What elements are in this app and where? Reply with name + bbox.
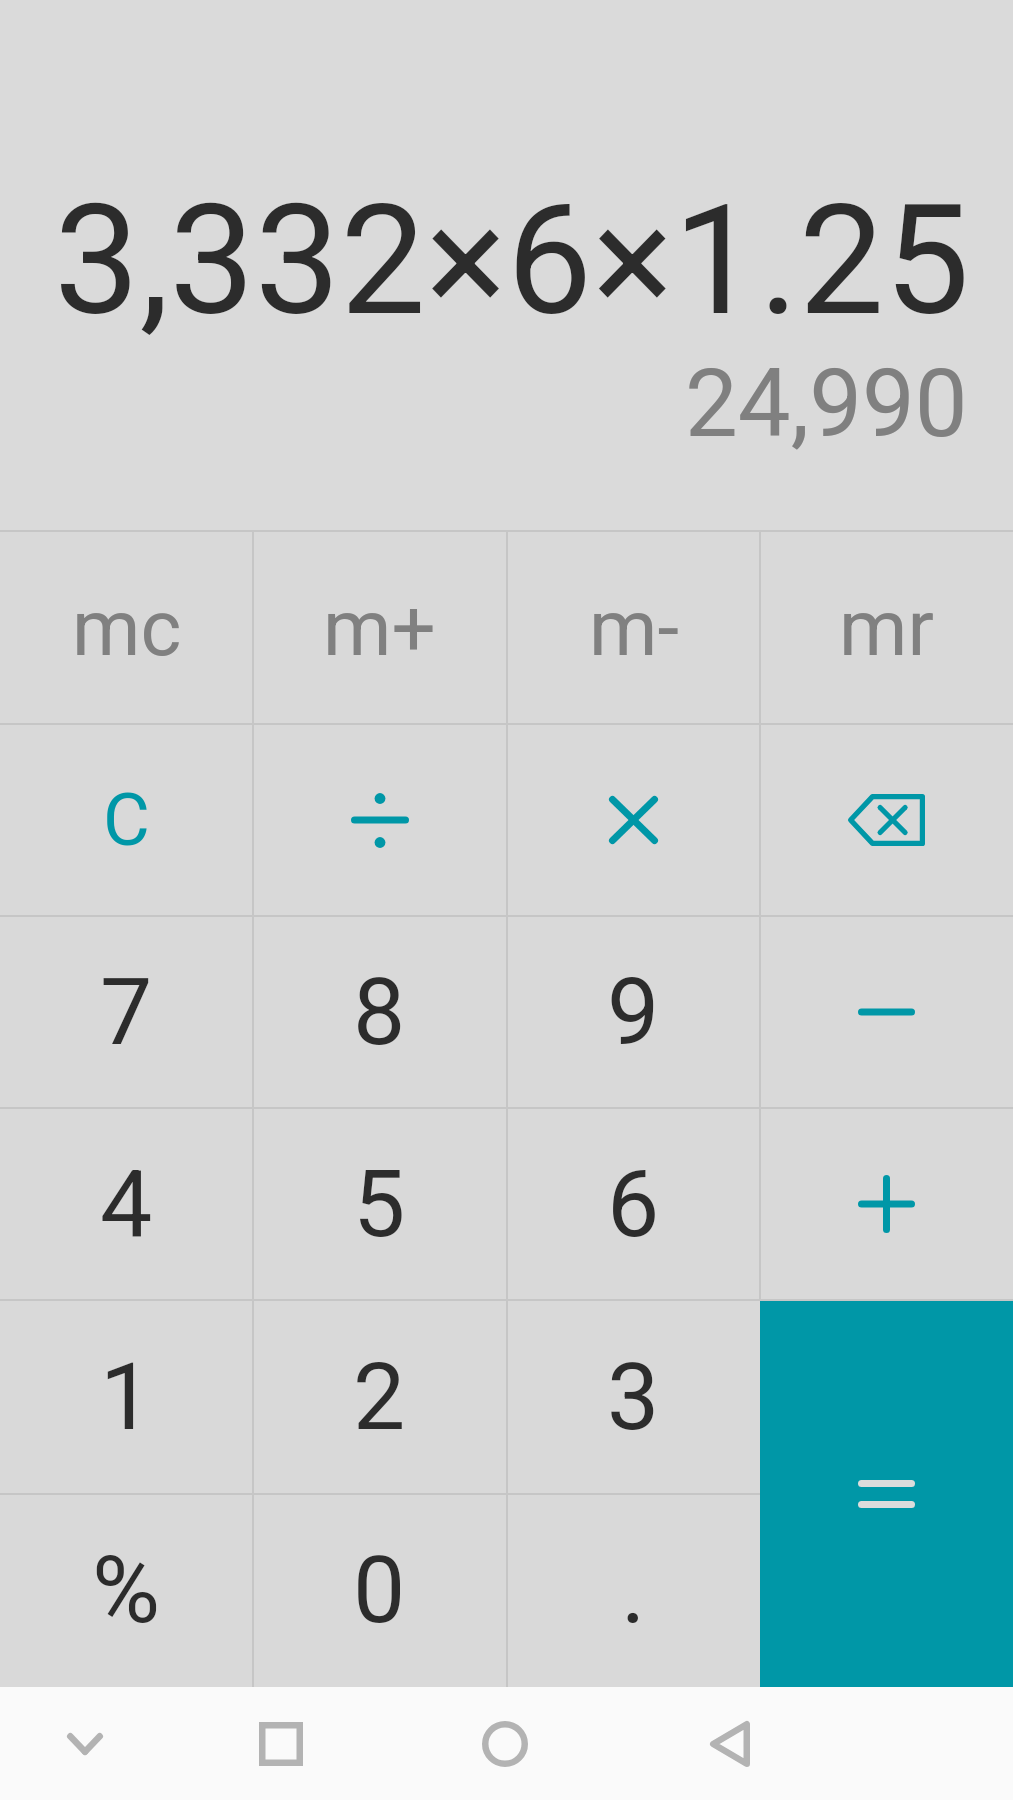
- button[interactable]: Hide keyboard: [0, 1687, 169, 1800]
- button[interactable]: Back: [645, 1687, 814, 1800]
- button[interactable]: Backspace: [760, 724, 1013, 916]
- button[interactable]: 7: [0, 916, 253, 1108]
- button[interactable]: m+: [253, 532, 506, 724]
- staticText: 5: [353, 1150, 406, 1259]
- staticText: 6: [607, 1150, 660, 1259]
- staticText: C: [103, 778, 150, 862]
- button[interactable]: .: [507, 1494, 760, 1687]
- button[interactable]: m-: [507, 532, 760, 724]
- button[interactable]: 8: [253, 916, 506, 1108]
- staticText: 8: [353, 958, 406, 1067]
- button[interactable]: Plus: [760, 1108, 1013, 1300]
- staticText: 0: [353, 1536, 406, 1645]
- button[interactable]: 3: [507, 1300, 760, 1494]
- button[interactable]: Equals: [760, 1300, 1013, 1687]
- button[interactable]: 0: [253, 1494, 506, 1687]
- staticText: 2: [353, 1343, 406, 1452]
- button[interactable]: Recent apps: [196, 1687, 365, 1800]
- button[interactable]: Minus: [760, 916, 1013, 1108]
- staticText: 4: [100, 1150, 153, 1259]
- staticText: 24,990: [685, 349, 968, 459]
- staticText: %: [92, 1536, 161, 1645]
- button[interactable]: C: [0, 724, 253, 916]
- staticText: 9: [607, 958, 660, 1067]
- button[interactable]: 5: [253, 1108, 506, 1300]
- staticText: m-: [589, 583, 679, 674]
- staticText: .: [621, 1536, 646, 1645]
- button[interactable]: 9: [507, 916, 760, 1108]
- staticText: 3,332×6×1.25: [54, 172, 970, 350]
- staticText: mr: [839, 583, 934, 674]
- staticText: 7: [100, 958, 153, 1067]
- button[interactable]: 6: [507, 1108, 760, 1300]
- staticText: 1: [100, 1343, 153, 1452]
- button[interactable]: Home: [420, 1687, 589, 1800]
- staticText: m+: [323, 583, 436, 674]
- button[interactable]: mr: [760, 532, 1013, 724]
- staticText: 3: [607, 1343, 660, 1452]
- button[interactable]: Multiply: [507, 724, 760, 916]
- button[interactable]: 4: [0, 1108, 253, 1300]
- staticText: mc: [72, 583, 182, 674]
- button[interactable]: mc: [0, 532, 253, 724]
- button[interactable]: Divide: [253, 724, 506, 916]
- button[interactable]: 1: [0, 1300, 253, 1494]
- button[interactable]: 2: [253, 1300, 506, 1494]
- button[interactable]: %: [0, 1494, 253, 1687]
